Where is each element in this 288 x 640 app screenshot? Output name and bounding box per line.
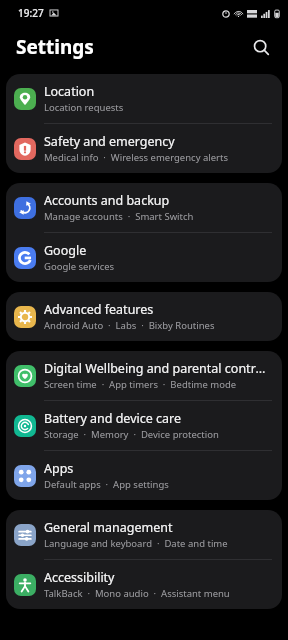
staticText: Accessibility	[44, 569, 115, 586]
staticText: Manage accounts · Smart Switch	[44, 210, 194, 223]
button[interactable]: Location	[6, 74, 282, 123]
staticText: Digital Wellbeing and parental controls	[44, 360, 272, 377]
staticText: Safety and emergency	[44, 133, 175, 150]
button[interactable]: Accounts and backup	[6, 183, 282, 232]
staticText: Apps	[44, 460, 74, 477]
staticText: Medical info · Wireless emergency alerts	[44, 151, 229, 164]
staticText: Settings	[16, 34, 94, 60]
button[interactable]: Digital Wellbeing and parental controls	[6, 351, 282, 400]
staticText: General management	[44, 519, 173, 536]
button[interactable]: Advanced features	[6, 292, 282, 341]
staticText: Default apps · App settings	[44, 478, 169, 491]
staticText: Location requests	[44, 101, 124, 114]
staticText: TalkBack · Mono audio · Assistant menu	[44, 587, 230, 600]
staticText: Storage · Memory · Device protection	[44, 428, 219, 441]
staticText: Accounts and backup	[44, 192, 170, 209]
staticText: Location	[44, 83, 95, 100]
staticText: 19:27	[18, 6, 44, 20]
staticText: Advanced features	[44, 301, 154, 318]
button[interactable]: Search	[244, 30, 278, 64]
staticText: Language and keyboard · Date and time	[44, 537, 228, 550]
staticText: Google services	[44, 260, 115, 273]
button[interactable]: Apps	[6, 451, 282, 500]
button[interactable]: General management	[6, 510, 282, 559]
staticText: Google	[44, 242, 87, 259]
button[interactable]: Safety and emergency	[6, 124, 282, 173]
staticText: Android Auto · Labs · Bixby Routines	[44, 319, 215, 332]
staticText: Screen time · App timers · Bedtime mode	[44, 378, 237, 391]
button[interactable]: Battery and device care	[6, 401, 282, 450]
button[interactable]: Accessibility	[6, 560, 282, 609]
staticText: Battery and device care	[44, 410, 182, 427]
button[interactable]: Google	[6, 233, 282, 282]
